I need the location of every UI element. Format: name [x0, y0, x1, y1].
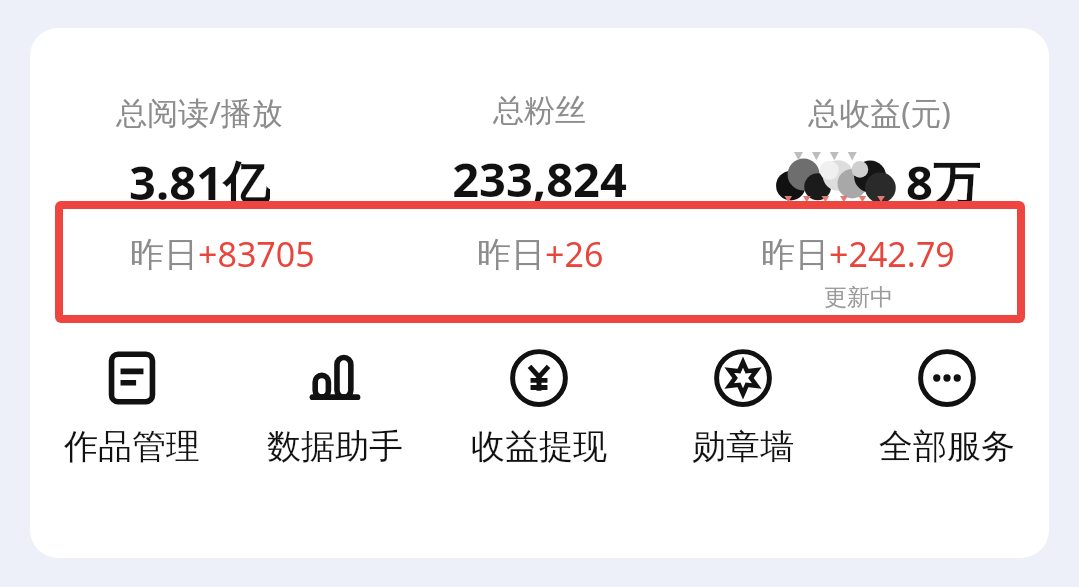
staticText: +83705	[198, 231, 315, 277]
staticText: 昨日	[130, 233, 198, 276]
staticText: 总粉丝	[493, 91, 586, 130]
staticText: 昨日	[477, 233, 545, 276]
button[interactable]: 昨日	[63, 209, 381, 315]
button[interactable]: 全部服务	[845, 345, 1049, 485]
button[interactable]: 昨日	[699, 209, 1017, 315]
staticText: 总阅读/播放	[116, 91, 283, 133]
staticText: 3.81亿	[129, 150, 270, 201]
button[interactable]: 数据助手	[233, 345, 437, 485]
staticText: +242.79	[829, 231, 955, 277]
staticText: +26	[545, 231, 604, 277]
button[interactable]: 勋章墙	[641, 345, 845, 485]
button[interactable]: 总粉丝	[369, 28, 709, 201]
staticText: 昨日	[761, 233, 829, 276]
button[interactable]: 昨日	[63, 209, 1017, 315]
button[interactable]: 总阅读/播放	[30, 28, 369, 201]
button[interactable]: 作品管理	[30, 345, 233, 485]
staticText: 勋章墙	[692, 425, 794, 468]
button[interactable]: 昨日	[381, 209, 699, 315]
button[interactable]: 收益提现	[437, 345, 641, 485]
staticText: 收益提现	[471, 425, 607, 468]
staticText: 233,824	[452, 147, 627, 201]
staticText: 作品管理	[64, 425, 200, 468]
staticText: 全部服务	[879, 425, 1015, 468]
button[interactable]: 总收益(元)	[709, 28, 1049, 201]
staticText: 总收益(元)	[808, 91, 951, 133]
staticText: 更新中	[824, 283, 893, 312]
staticText: 数据助手	[267, 425, 403, 468]
staticText: 8万	[906, 150, 980, 201]
